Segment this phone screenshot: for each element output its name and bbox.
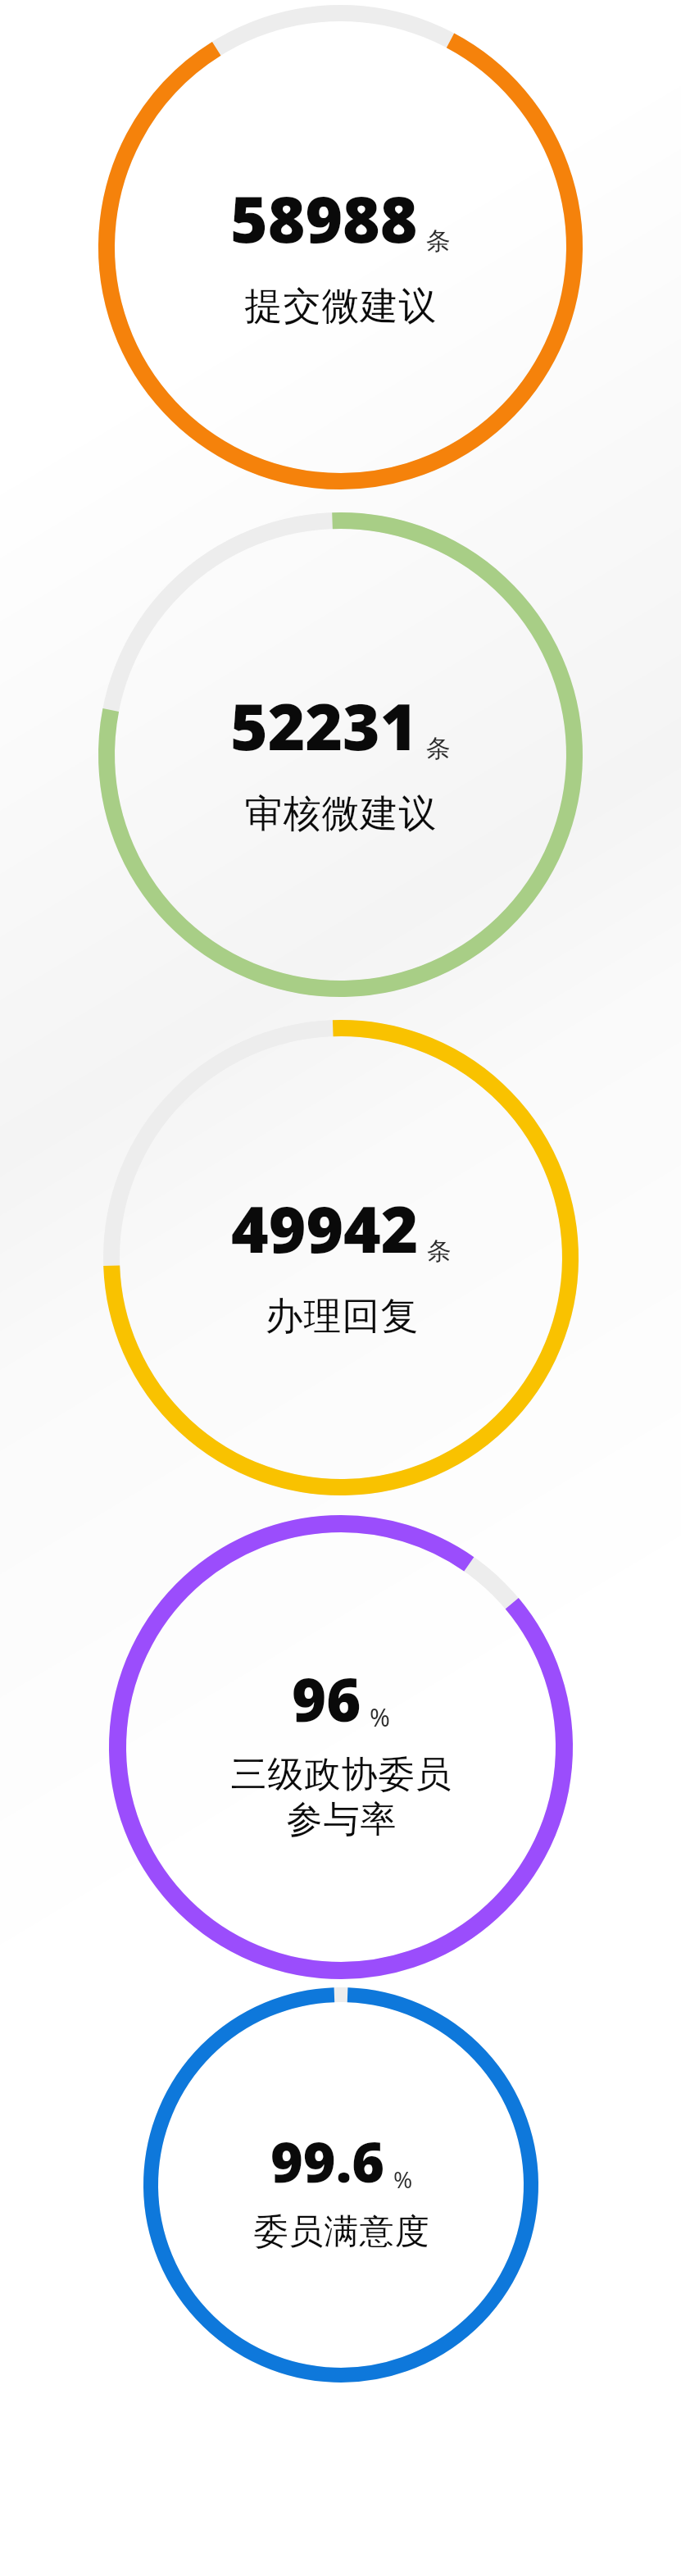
staticText: 条 <box>426 225 451 257</box>
button[interactable]: 三级政协委员参与率 96% <box>109 1515 573 1979</box>
staticText: % <box>370 1700 390 1734</box>
staticText: 条 <box>427 1236 452 1267</box>
staticText: 办理回复 <box>265 1293 419 1340</box>
staticText: 96 <box>292 1659 361 1739</box>
staticText: 52231 <box>230 682 418 769</box>
staticText: 条 <box>426 733 451 764</box>
staticText: 99.6 <box>270 2123 385 2199</box>
button[interactable]: 委员满意度 99.6% <box>143 1987 538 2383</box>
staticText: 提交微建议 <box>244 283 437 330</box>
staticText: 三级政协委员 <box>230 1752 452 1797</box>
button[interactable]: 审核微建议 52231 条 <box>98 512 583 997</box>
staticText: 审核微建议 <box>244 790 437 838</box>
button[interactable]: 提交微建议 58988 条 <box>98 5 583 489</box>
staticText: 49942 <box>231 1185 419 1272</box>
staticText: 委员满意度 <box>253 2210 429 2254</box>
staticText: 58988 <box>230 175 418 262</box>
staticText: % <box>393 2164 413 2195</box>
staticText: 参与率 <box>286 1797 397 1842</box>
button[interactable]: 办理回复 49942 条 <box>103 1020 579 1495</box>
